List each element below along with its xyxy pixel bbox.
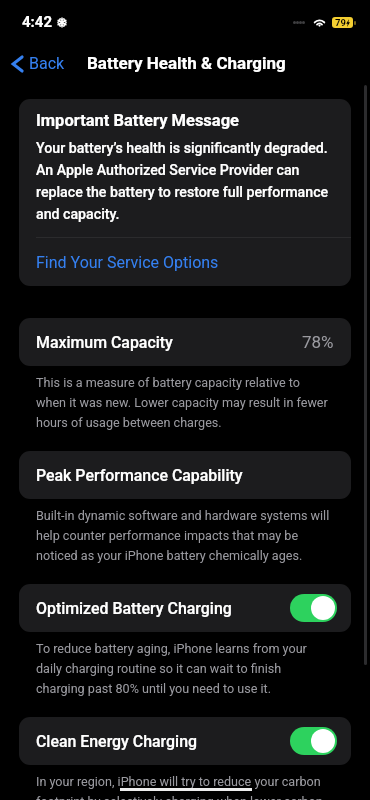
staticText: 4:42 bbox=[22, 13, 53, 31]
staticText: Your battery’s health is significantly d… bbox=[36, 136, 335, 224]
button[interactable]: Find Your Service Options bbox=[19, 238, 351, 286]
staticText: Clean Energy Charging bbox=[36, 732, 197, 751]
button[interactable]: Peak Performance Capability bbox=[19, 451, 351, 499]
staticText: Built-in dynamic software and hardware s… bbox=[36, 504, 332, 564]
staticText: Find Your Service Options bbox=[36, 253, 219, 272]
staticText: Back bbox=[29, 54, 65, 73]
staticText: This is a measure of battery capacity re… bbox=[36, 371, 332, 431]
button[interactable]: Back bbox=[0, 48, 73, 79]
staticText: 78% bbox=[302, 332, 334, 352]
button[interactable]: Toggle bbox=[290, 727, 337, 755]
staticText: Battery Health & Charging bbox=[87, 53, 286, 73]
button[interactable]: Clean Energy Charging bbox=[19, 717, 351, 765]
staticText: In your region, iPhone will try to reduc… bbox=[36, 770, 332, 800]
staticText: Maximum Capacity bbox=[36, 333, 173, 352]
button[interactable]: Maximum Capacity bbox=[19, 318, 351, 366]
button[interactable]: Toggle bbox=[290, 594, 337, 622]
staticText: Optimized Battery Charging bbox=[36, 599, 232, 618]
staticText: Peak Performance Capability bbox=[36, 466, 243, 485]
staticText: Important Battery Message bbox=[36, 111, 240, 130]
staticText: To reduce battery aging, iPhone learns f… bbox=[36, 637, 332, 697]
staticText: 79 bbox=[335, 17, 346, 28]
button[interactable]: Optimized Battery Charging bbox=[19, 584, 351, 632]
